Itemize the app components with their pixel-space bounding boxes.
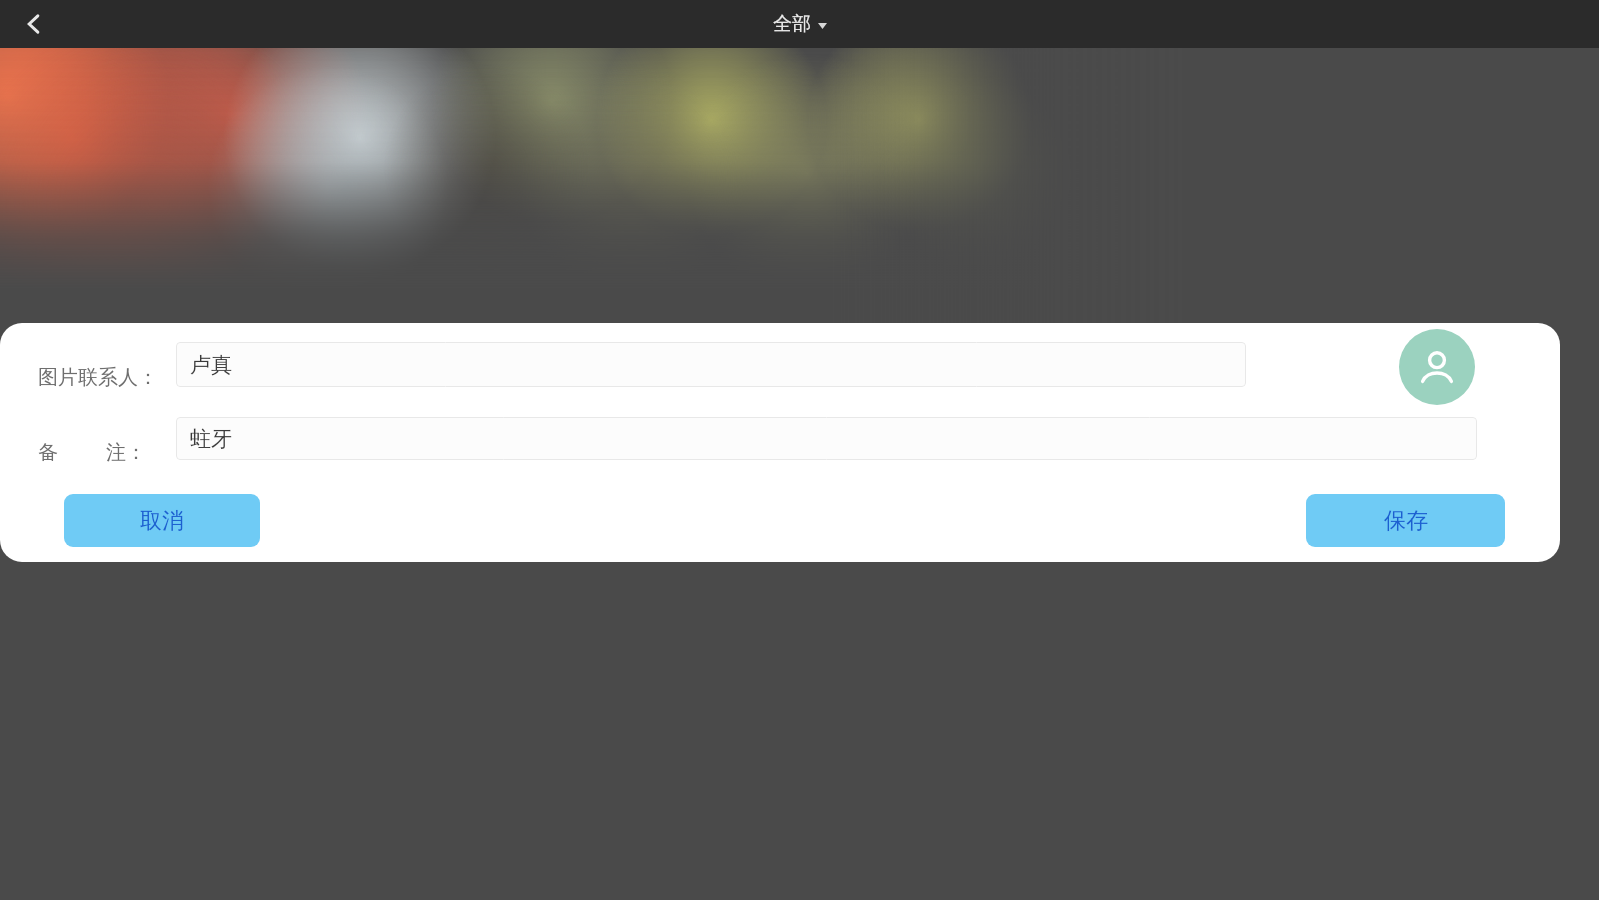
staticText: 保存	[1384, 507, 1428, 535]
button[interactable]: 卢真	[176, 342, 1246, 387]
button[interactable]: 蛀牙	[176, 417, 1477, 460]
staticText: 卢真	[190, 352, 232, 378]
button[interactable]: Back	[0, 0, 68, 48]
staticText: 全部	[773, 12, 811, 36]
button[interactable]: Contact avatar	[1399, 329, 1475, 405]
staticText: 备	[38, 440, 58, 465]
button[interactable]: 保存	[1306, 494, 1505, 547]
staticText: 取消	[140, 507, 184, 535]
staticText: 蛀牙	[190, 426, 232, 452]
staticText: 注：	[106, 440, 146, 465]
staticText: 图片联系人：	[38, 365, 158, 390]
button[interactable]: 取消	[64, 494, 260, 547]
button[interactable]: 全部	[773, 12, 827, 36]
